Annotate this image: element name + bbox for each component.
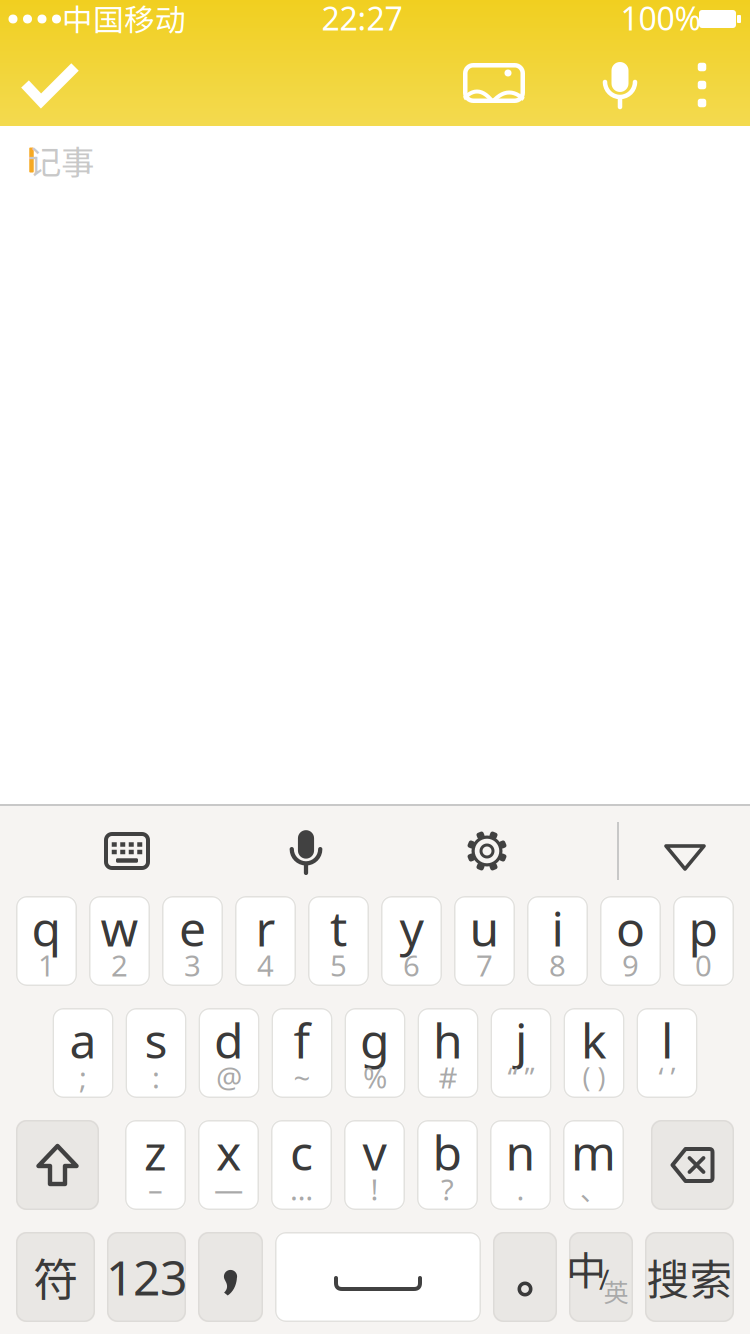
staticText: 2 — [111, 945, 128, 984]
staticText: 4 — [257, 945, 274, 984]
button[interactable]: l — [636, 1008, 697, 1098]
staticText: i — [551, 896, 563, 960]
button[interactable]: Switch language — [569, 1232, 633, 1322]
staticText: v — [362, 1120, 386, 1184]
staticText: g — [360, 1008, 390, 1072]
staticText: 22:27 — [321, 0, 402, 39]
button[interactable]: p — [673, 896, 734, 986]
staticText: % — [363, 1057, 387, 1096]
button[interactable]: t — [308, 896, 369, 986]
staticText: w — [100, 896, 138, 960]
button[interactable]: b — [417, 1120, 478, 1210]
staticText: ~ — [293, 1057, 310, 1096]
button[interactable]: k — [563, 1008, 624, 1098]
button[interactable]: a — [52, 1008, 113, 1098]
staticText: p — [688, 896, 718, 960]
staticText: k — [581, 1008, 607, 1072]
staticText: 100% — [620, 0, 701, 39]
button[interactable]: j — [490, 1008, 551, 1098]
staticText: u — [469, 896, 499, 960]
button[interactable]: z — [125, 1120, 186, 1210]
staticText: 中国移动 — [62, 0, 186, 40]
staticText: 9 — [622, 945, 639, 984]
staticText: r — [255, 896, 275, 960]
button[interactable]: Dismiss keyboard — [654, 827, 716, 889]
staticText: @ — [216, 1057, 242, 1096]
staticText: f — [293, 1008, 310, 1072]
button[interactable]: e — [162, 896, 223, 986]
staticText: 、 — [580, 1170, 607, 1208]
button[interactable]: s — [125, 1008, 186, 1098]
staticText: 记事 — [28, 136, 94, 184]
staticText: … — [290, 1169, 313, 1208]
staticText: 123 — [106, 1245, 187, 1309]
staticText: m — [571, 1120, 616, 1184]
staticText: 6 — [403, 945, 420, 984]
staticText: b — [432, 1120, 462, 1184]
staticText: a — [69, 1008, 96, 1072]
button[interactable]: Period — [493, 1232, 557, 1322]
button[interactable]: Numbers — [107, 1232, 186, 1322]
staticText: s — [144, 1008, 167, 1072]
button[interactable]: Keyboard — [94, 820, 160, 882]
button[interactable]: Done — [12, 47, 88, 123]
staticText: 中 — [566, 1239, 606, 1297]
staticText: . — [516, 1169, 524, 1208]
staticText: c — [290, 1120, 313, 1184]
staticText: ! — [370, 1169, 378, 1208]
staticText: 3 — [184, 945, 201, 984]
staticText: 8 — [549, 945, 566, 984]
button[interactable]: n — [490, 1120, 551, 1210]
staticText: y — [399, 896, 423, 960]
staticText: ‘ ’ — [658, 1058, 675, 1096]
staticText: / — [599, 1260, 609, 1298]
button[interactable]: Search — [645, 1232, 734, 1322]
staticText: x — [216, 1120, 241, 1184]
staticText: — — [214, 1169, 243, 1208]
staticText: “ ” — [507, 1058, 534, 1096]
staticText: : — [152, 1057, 160, 1096]
button[interactable]: i — [527, 896, 588, 986]
button[interactable]: v — [344, 1120, 405, 1210]
staticText: n — [505, 1120, 535, 1184]
staticText: q — [31, 896, 61, 960]
button[interactable]: Space — [275, 1232, 481, 1322]
staticText: 英 — [603, 1273, 628, 1309]
staticText: e — [179, 896, 206, 960]
button[interactable]: m — [563, 1120, 624, 1210]
staticText: 1 — [38, 945, 55, 984]
staticText: h — [433, 1008, 463, 1072]
button[interactable]: d — [198, 1008, 259, 1098]
button[interactable]: r — [235, 896, 296, 986]
button[interactable]: Delete — [651, 1120, 734, 1210]
staticText: o — [616, 896, 645, 960]
button[interactable]: f — [271, 1008, 332, 1098]
staticText: # — [438, 1057, 457, 1096]
staticText: 符 — [33, 1244, 78, 1310]
button[interactable]: q — [16, 896, 77, 986]
staticText: ; — [79, 1057, 87, 1096]
button[interactable]: Dictation — [278, 821, 334, 883]
button[interactable]: w — [89, 896, 150, 986]
button[interactable]: h — [417, 1008, 478, 1098]
button[interactable]: g — [344, 1008, 405, 1098]
button[interactable]: Insert photo — [456, 45, 532, 121]
button[interactable]: u — [454, 896, 515, 986]
button[interactable]: Shift — [16, 1120, 99, 1210]
button[interactable]: o — [600, 896, 661, 986]
staticText: z — [144, 1120, 167, 1184]
staticText: 5 — [330, 945, 347, 984]
staticText: l — [661, 1008, 673, 1072]
staticText: 7 — [476, 945, 493, 984]
button[interactable]: Comma — [198, 1232, 263, 1322]
button[interactable]: c — [271, 1120, 332, 1210]
button[interactable]: Voice input — [588, 47, 652, 123]
staticText: ( ) — [582, 1059, 605, 1095]
staticText: j — [515, 1008, 527, 1072]
button[interactable]: More — [677, 47, 727, 123]
staticText: ? — [441, 1169, 454, 1208]
button[interactable]: x — [198, 1120, 259, 1210]
button[interactable]: Keyboard settings — [456, 820, 518, 882]
button[interactable]: y — [381, 896, 442, 986]
button[interactable]: Symbols — [16, 1232, 95, 1322]
